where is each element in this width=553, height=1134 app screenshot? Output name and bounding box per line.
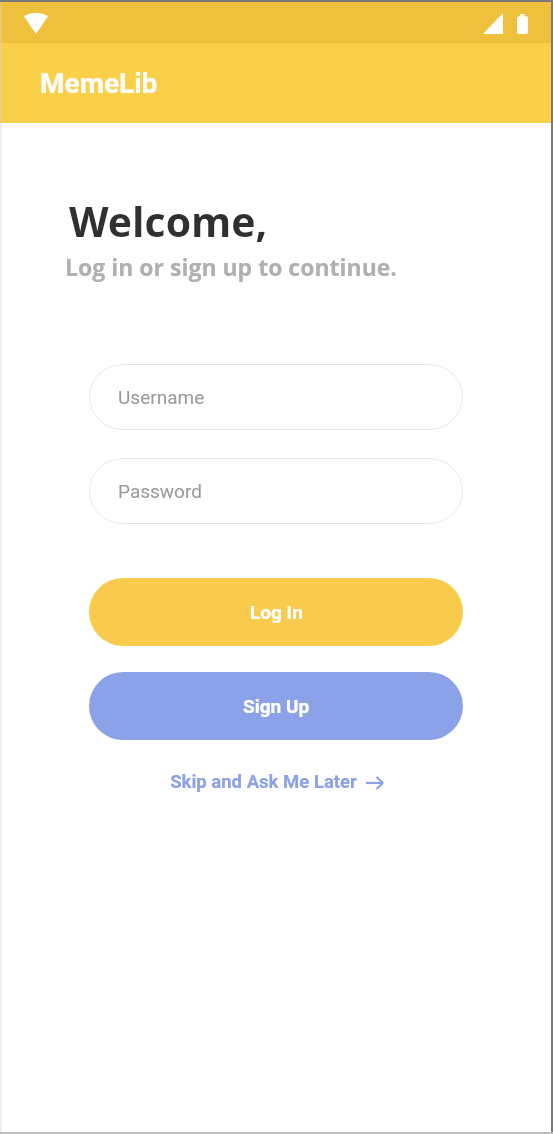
button[interactable]: Skip and Ask Me Later	[89, 771, 463, 793]
button[interactable]: Password	[89, 458, 463, 524]
button[interactable]: Log In	[89, 578, 463, 646]
other: Wi-Fi	[24, 13, 48, 34]
button[interactable]: Username	[89, 364, 463, 430]
staticText: Password	[118, 480, 202, 502]
staticText: Username	[118, 386, 205, 408]
staticText: Sign Up	[243, 695, 310, 717]
staticText: Log in or sign up to continue.	[65, 251, 397, 282]
staticText: Log In	[250, 601, 303, 623]
staticText: MemeLib	[40, 67, 158, 100]
staticText: Welcome,	[69, 193, 268, 249]
staticText: Skip and Ask Me Later	[170, 771, 357, 793]
button[interactable]: Sign Up	[89, 672, 463, 740]
other: Signal strength	[483, 13, 503, 34]
other: Battery	[517, 14, 528, 34]
